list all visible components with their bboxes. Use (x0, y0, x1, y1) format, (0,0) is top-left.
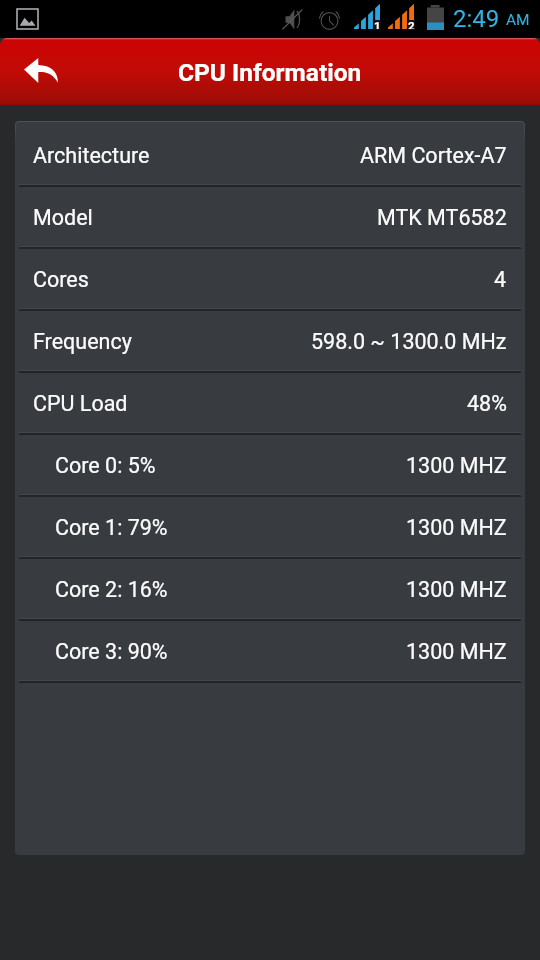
button[interactable]: Architecture (15, 124, 525, 186)
staticText: 4 (494, 267, 507, 292)
button[interactable]: Core 2: 16% (15, 558, 525, 620)
staticText: 48% (467, 391, 507, 416)
staticText: 1 (374, 19, 381, 29)
staticText: Frequency (33, 329, 132, 354)
staticText: 1300 MHZ (406, 515, 507, 540)
staticText: 2:49 (453, 5, 500, 33)
staticText: Model (33, 205, 93, 230)
staticText: AM (506, 11, 530, 29)
button[interactable]: Frequency (15, 310, 525, 372)
staticText: Core 0: 5% (55, 453, 156, 478)
staticText: 1300 MHZ (406, 639, 507, 664)
button[interactable]: Core 3: 90% (15, 620, 525, 682)
button[interactable]: Core 1: 79% (15, 496, 525, 558)
staticText: ARM Cortex-A7 (360, 143, 507, 168)
button[interactable]: Cores (15, 248, 525, 310)
button[interactable]: CPU Load (15, 372, 525, 434)
button[interactable]: Model (15, 186, 525, 248)
staticText: Cores (33, 267, 89, 292)
button[interactable]: Core 0: 5% (15, 434, 525, 496)
staticText: Core 2: 16% (55, 577, 168, 602)
staticText: Core 1: 79% (55, 515, 168, 540)
staticText: CPU Load (33, 391, 128, 416)
staticText: 2 (408, 19, 415, 29)
staticText: MTK MT6582 (377, 205, 507, 230)
button[interactable]: Back (0, 38, 82, 105)
staticText: 598.0 ~ 1300.0 MHz (311, 329, 507, 354)
staticText: Core 3: 90% (55, 639, 168, 664)
staticText: CPU Information (178, 58, 362, 87)
staticText: Architecture (33, 143, 150, 168)
staticText: 1300 MHZ (406, 577, 507, 602)
staticText: 1300 MHZ (406, 453, 507, 478)
